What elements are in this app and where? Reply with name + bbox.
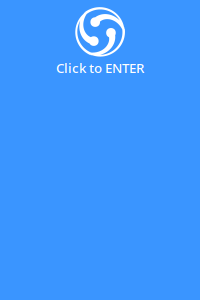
button[interactable]: Click to ENTER xyxy=(56,4,144,77)
staticText: Click to ENTER xyxy=(56,59,144,77)
